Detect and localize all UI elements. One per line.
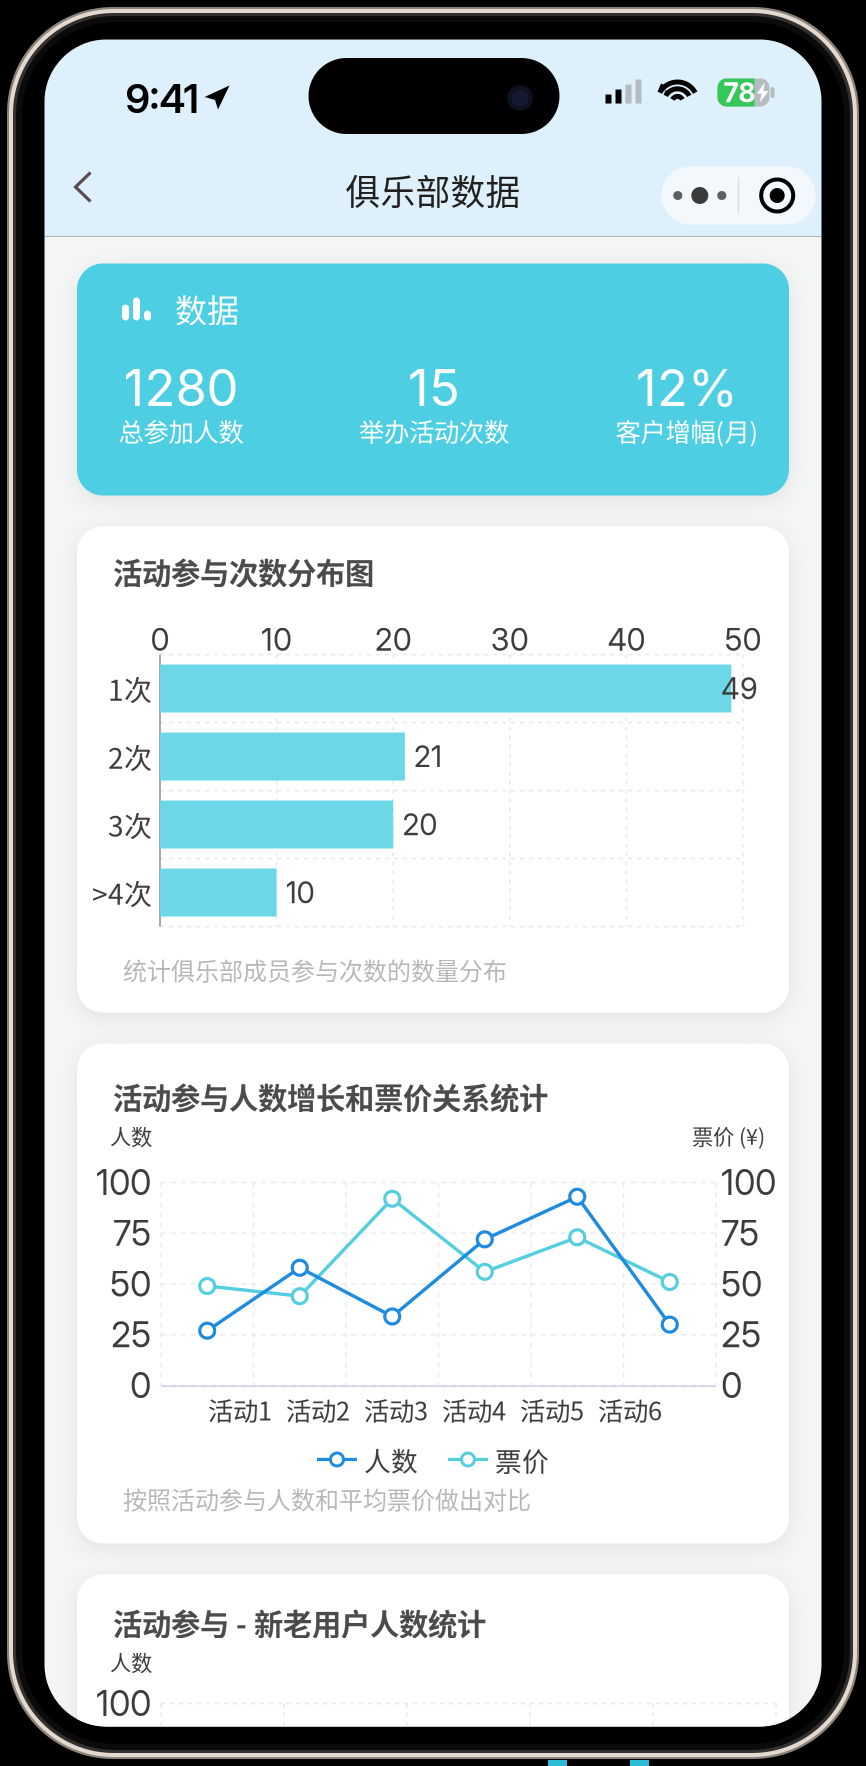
staticText: 总参加人数 [118,412,243,449]
staticText: 活动参与 - 新老用户人数统计 [113,1601,486,1644]
staticText: 75 [721,1212,759,1254]
staticText: 举办活动次数 [359,412,509,449]
staticText: 活动6 [598,1391,662,1428]
button[interactable]: 更多 [662,166,738,224]
button[interactable]: 关闭 [739,166,815,224]
staticText: 25 [111,1314,151,1356]
staticText: 100 [721,1161,776,1203]
staticText: 1次 [108,668,152,709]
staticText: 20 [402,807,437,842]
staticText: 活动参与次数分布图 [113,550,374,593]
staticText: 100 [96,1161,151,1203]
staticText: 活动参与人数增长和票价关系统计 [113,1075,548,1118]
staticText: 人数 [110,1646,152,1677]
staticText: 78 [723,76,755,109]
staticText: 活动5 [520,1391,584,1428]
staticText: 客户增幅(月) [615,412,758,449]
staticText: 21 [414,739,442,774]
staticText: 0 [130,1364,151,1406]
staticText: 活动2 [286,1391,350,1428]
staticText: 统计俱乐部成员参与次数的数量分布 [123,952,507,987]
staticText: >4次 [92,872,152,913]
staticText: 活动3 [364,1391,428,1428]
staticText: 人数 [364,1440,418,1479]
staticText: 100 [96,1682,151,1724]
staticText: 49 [721,671,758,706]
staticText: 俱乐部数据 [345,165,520,215]
staticText: 3次 [108,804,152,845]
staticText: 0 [150,621,169,658]
staticText: 票价 [495,1440,549,1479]
staticText: 15 [408,357,460,418]
staticText: 10 [286,875,315,910]
staticText: 9:41 [125,74,198,123]
staticText: 50 [721,1263,762,1305]
staticText: 40 [607,621,645,658]
staticText: 2次 [108,736,152,777]
staticText: 票价 (¥) [692,1120,765,1151]
staticText: 10 [261,621,292,658]
staticText: 50 [724,621,761,658]
staticText: 20 [375,621,412,658]
staticText: 数据 [175,285,239,332]
staticText: 人数 [110,1120,152,1151]
staticText: 活动1 [208,1391,272,1428]
staticText: 75 [113,1212,151,1254]
button[interactable]: 返回 [50,144,115,229]
staticText: 活动4 [442,1391,506,1428]
staticText: 按照活动参与人数和平均票价做出对比 [123,1481,531,1516]
staticText: 30 [491,621,529,658]
staticText: 0 [721,1364,742,1406]
staticText: 1280 [123,357,238,418]
staticText: 25 [721,1314,761,1356]
staticText: 50 [110,1263,151,1305]
staticText: 12% [636,357,738,418]
